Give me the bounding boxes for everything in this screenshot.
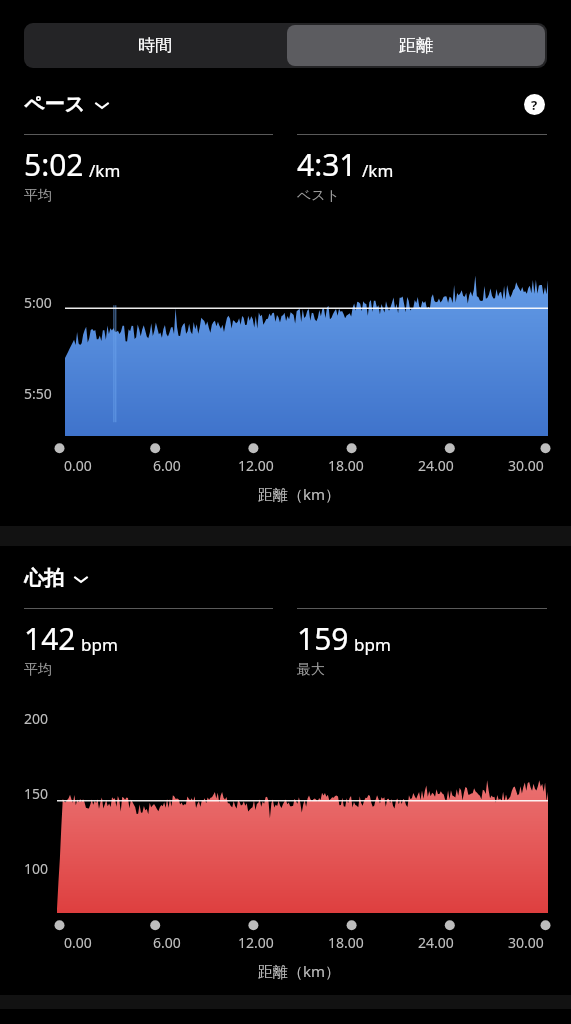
button[interactable]: 159 (297, 608, 547, 679)
staticText: 18.00 (328, 933, 364, 952)
staticText: ? (531, 96, 538, 114)
button[interactable]: 距離 (287, 25, 545, 66)
staticText: 時間 (138, 35, 172, 56)
staticText: 0.00 (64, 456, 92, 475)
button[interactable]: 142 (24, 608, 273, 679)
button[interactable]: 時間 (24, 23, 285, 68)
staticText: 142 (24, 618, 76, 659)
staticText: 12.00 (238, 933, 274, 952)
staticText: 150 (24, 784, 49, 803)
button[interactable]: 5:02 (24, 134, 273, 205)
staticText: 30.00 (508, 456, 544, 475)
staticText: ペース (24, 92, 85, 117)
staticText: /km (362, 159, 394, 182)
button[interactable]: 4:31 (297, 134, 547, 205)
staticText: 心拍 (24, 566, 64, 591)
staticText: 平均 (24, 187, 52, 205)
staticText: 30.00 (508, 933, 544, 952)
staticText: 5:00 (24, 293, 52, 312)
staticText: 0.00 (64, 933, 92, 952)
staticText: 18.00 (328, 456, 364, 475)
staticText: 最大 (297, 661, 325, 679)
staticText: 距離 (399, 35, 433, 56)
staticText: 6.00 (153, 456, 181, 475)
button[interactable]: 心拍 (24, 566, 89, 591)
staticText: 159 (297, 618, 349, 659)
staticText: bpm (81, 633, 118, 656)
staticText: ベスト (297, 187, 340, 205)
staticText: 距離（km） (258, 484, 341, 504)
staticText: 6.00 (153, 933, 181, 952)
staticText: 24.00 (418, 456, 454, 475)
staticText: 100 (24, 859, 49, 878)
staticText: 4:31 (297, 144, 357, 185)
staticText: /km (89, 159, 121, 182)
staticText: 200 (24, 709, 49, 728)
staticText: 5:02 (24, 144, 84, 185)
staticText: 12.00 (238, 456, 274, 475)
staticText: 平均 (24, 661, 52, 679)
button[interactable]: ペース (24, 92, 110, 117)
staticText: bpm (354, 633, 391, 656)
staticText: 距離（km） (258, 961, 341, 981)
staticText: 5:50 (24, 384, 52, 403)
button[interactable]: Help (521, 91, 547, 117)
staticText: 24.00 (418, 933, 454, 952)
